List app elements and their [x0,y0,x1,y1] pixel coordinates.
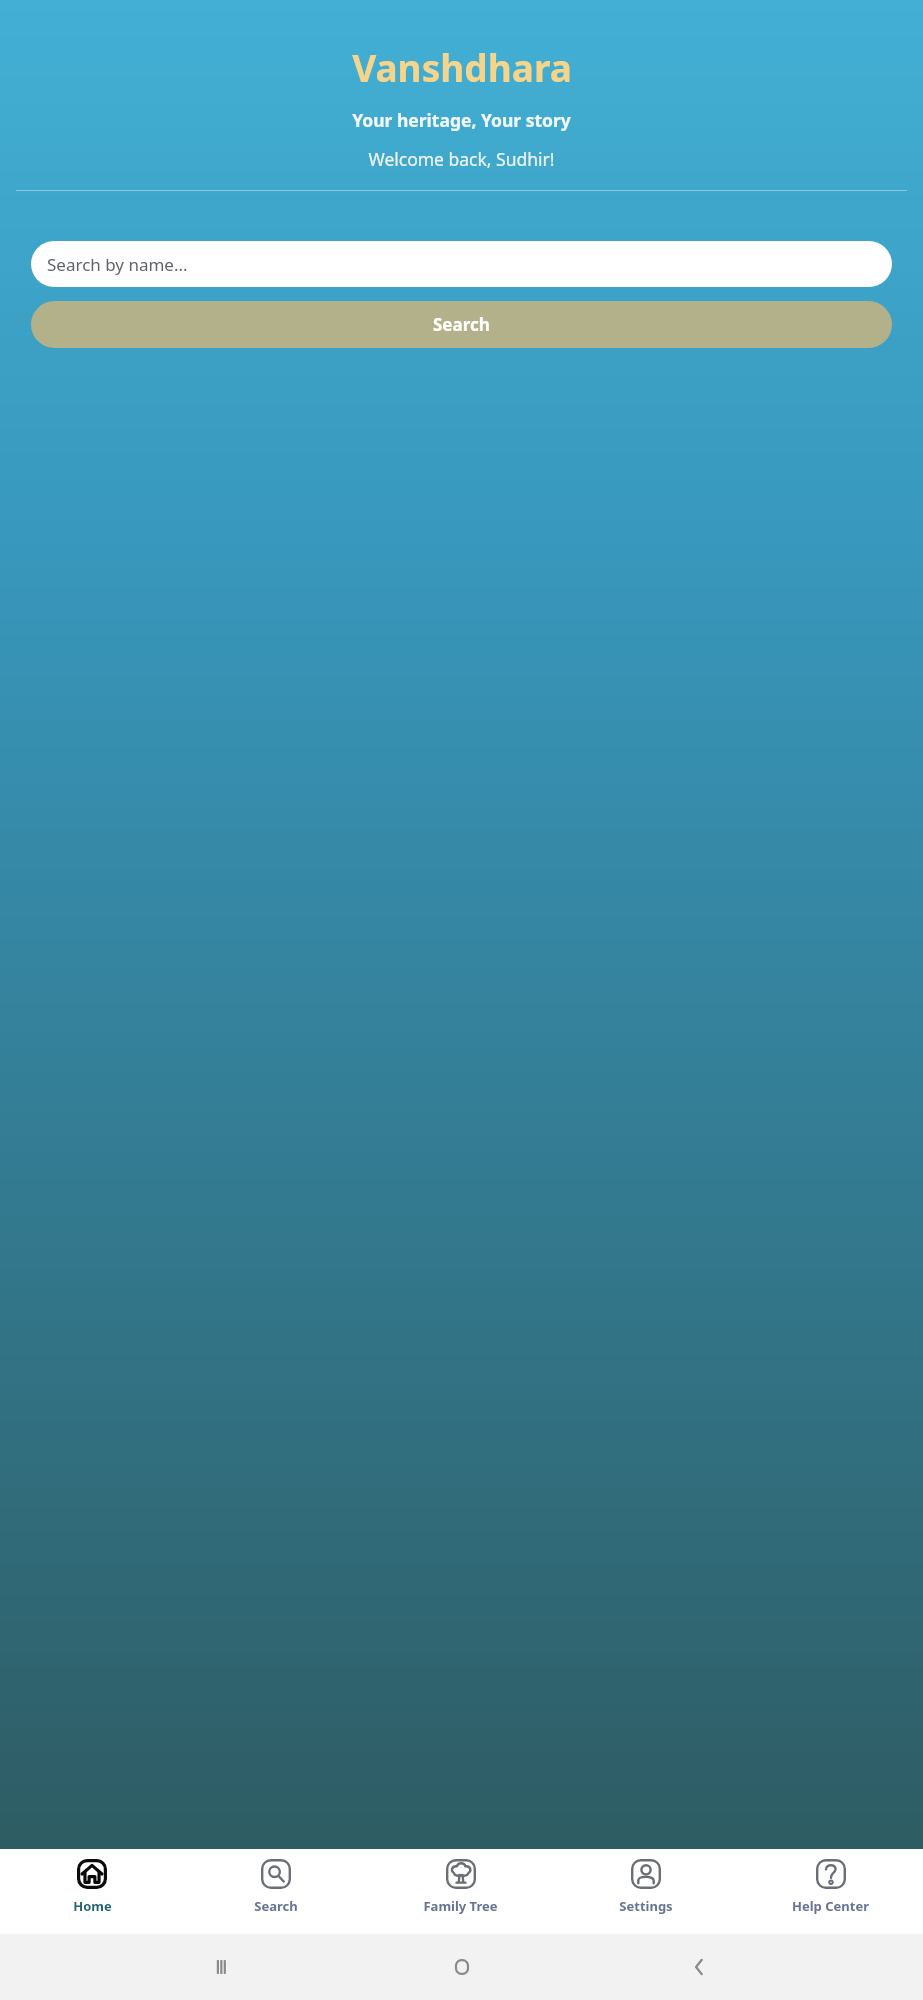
staticText: Help Center [792,1897,869,1915]
staticText: Search [254,1897,298,1915]
button[interactable]: Family Tree [368,1849,553,1934]
button[interactable]: Search [184,1849,368,1934]
staticText: Vanshdhara [352,42,572,92]
button[interactable]: Home [0,1849,184,1934]
staticText: Your heritage, Your story [352,108,571,132]
staticText: Home [73,1897,112,1915]
button[interactable]: Search [31,301,892,348]
button[interactable]: Search by name... [31,241,892,287]
staticText: Welcome back, Sudhir! [368,147,555,171]
staticText: Family Tree [423,1897,498,1915]
button[interactable]: Help Center [738,1849,923,1934]
button[interactable]: Settings [553,1849,738,1934]
staticText: Search by name... [47,253,188,276]
staticText: Settings [619,1897,673,1915]
staticText: Search [433,313,490,336]
